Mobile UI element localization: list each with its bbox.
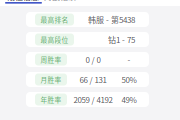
staticText: 年胜率 (40, 95, 61, 104)
staticText: 50% (121, 74, 136, 85)
staticText: 月胜率 (40, 75, 61, 84)
staticText: 49% (121, 94, 136, 105)
staticText: 66 / 131 (79, 74, 106, 85)
button[interactable]: 段位信息 (0, 0, 38, 10)
staticText: 0 / 0 (85, 54, 100, 65)
staticText: 最高段位 (40, 35, 68, 44)
staticText: 段位信息 (7, 0, 39, 2)
staticText: 对战记录 (44, 0, 76, 2)
button[interactable]: 最高排名 (26, 12, 149, 27)
staticText: 钻1 - 75 (108, 34, 135, 45)
button[interactable]: 最高段位 (26, 32, 149, 47)
button[interactable]: 年胜率 (26, 92, 149, 107)
button[interactable]: 对战记录 (0, 0, 38, 10)
staticText: 周胜率 (40, 55, 61, 64)
button[interactable]: 月胜率 (26, 72, 149, 87)
staticText: 最高排名 (40, 15, 68, 24)
button[interactable]: 周胜率 (26, 52, 149, 67)
staticText: 2059 / 4192 (73, 94, 112, 105)
staticText: - (127, 54, 130, 65)
staticText: 韩服 - 第5438 (88, 14, 135, 25)
